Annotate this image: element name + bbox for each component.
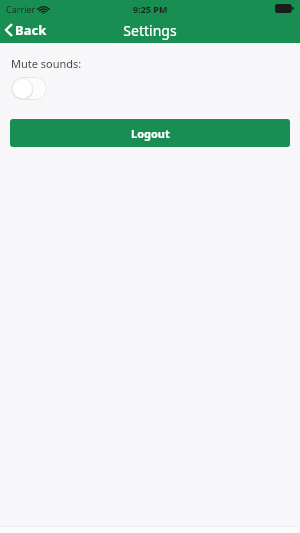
staticText: Settings — [123, 21, 177, 40]
staticText: Back — [15, 21, 47, 39]
staticText: Carrier — [6, 3, 36, 15]
staticText: 9:25 PM — [133, 3, 168, 15]
staticText: Mute sounds: — [11, 56, 82, 71]
button[interactable]: Logout — [10, 119, 290, 147]
staticText: Logout — [131, 126, 170, 141]
button[interactable]: Mute sounds toggle, off — [11, 77, 47, 100]
button[interactable]: Back — [0, 18, 55, 42]
